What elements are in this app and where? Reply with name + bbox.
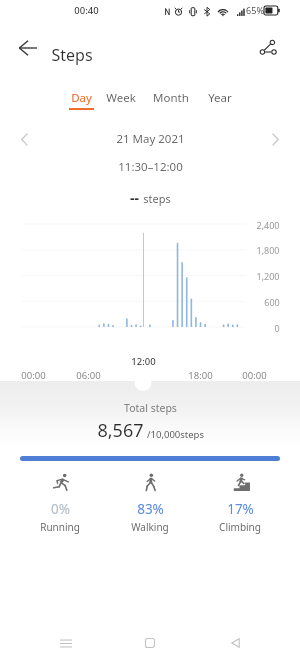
staticText: 65% bbox=[246, 4, 264, 16]
button[interactable]: Recent apps bbox=[47, 624, 85, 662]
button[interactable]: Back bbox=[216, 624, 254, 662]
staticText: Climbing bbox=[219, 520, 261, 534]
staticText: Day bbox=[71, 90, 92, 106]
staticText: 2,400 bbox=[256, 219, 280, 231]
button[interactable]: Day bbox=[57, 90, 105, 114]
button[interactable]: Year bbox=[196, 90, 244, 114]
button[interactable]: Week bbox=[97, 90, 145, 114]
staticText: 18:00 bbox=[188, 369, 213, 382]
button[interactable]: Share bbox=[250, 37, 286, 59]
button[interactable]: 17% bbox=[200, 470, 280, 536]
staticText: Month bbox=[153, 90, 189, 106]
button[interactable]: Home bbox=[131, 624, 169, 662]
staticText: 8,567 bbox=[97, 418, 144, 443]
staticText: 00:00 bbox=[242, 369, 267, 382]
button[interactable]: Previous day bbox=[12, 127, 36, 151]
staticText: 1,800 bbox=[256, 244, 280, 256]
staticText: Week bbox=[106, 90, 136, 106]
staticText: 11:30–12:00 bbox=[118, 159, 183, 175]
staticText: 0 bbox=[274, 322, 280, 334]
staticText: Steps bbox=[51, 44, 93, 66]
staticText: 600 bbox=[264, 296, 280, 308]
staticText: Year bbox=[208, 90, 232, 106]
staticText: Total steps bbox=[124, 401, 177, 415]
button[interactable]: Next day bbox=[264, 127, 288, 151]
staticText: 1,200 bbox=[256, 270, 280, 282]
button[interactable]: 83% bbox=[110, 470, 190, 536]
staticText: 00:00 bbox=[21, 369, 46, 382]
button[interactable]: Back bbox=[10, 37, 46, 59]
staticText: 21 May 2021 bbox=[116, 131, 185, 147]
button[interactable]: 0% bbox=[20, 470, 100, 536]
staticText: 83% bbox=[137, 500, 164, 518]
staticText: -- bbox=[130, 188, 139, 207]
staticText: 17% bbox=[227, 500, 254, 518]
staticText: 12:00 bbox=[131, 355, 156, 368]
staticText: /10,000steps bbox=[147, 428, 204, 441]
staticText: 0% bbox=[51, 500, 70, 518]
staticText: 06:00 bbox=[76, 369, 101, 382]
staticText: steps bbox=[143, 191, 171, 206]
staticText: 00:40 bbox=[74, 4, 99, 17]
staticText: Walking bbox=[131, 520, 169, 534]
button[interactable]: Month bbox=[147, 90, 195, 114]
staticText: Running bbox=[40, 520, 80, 534]
